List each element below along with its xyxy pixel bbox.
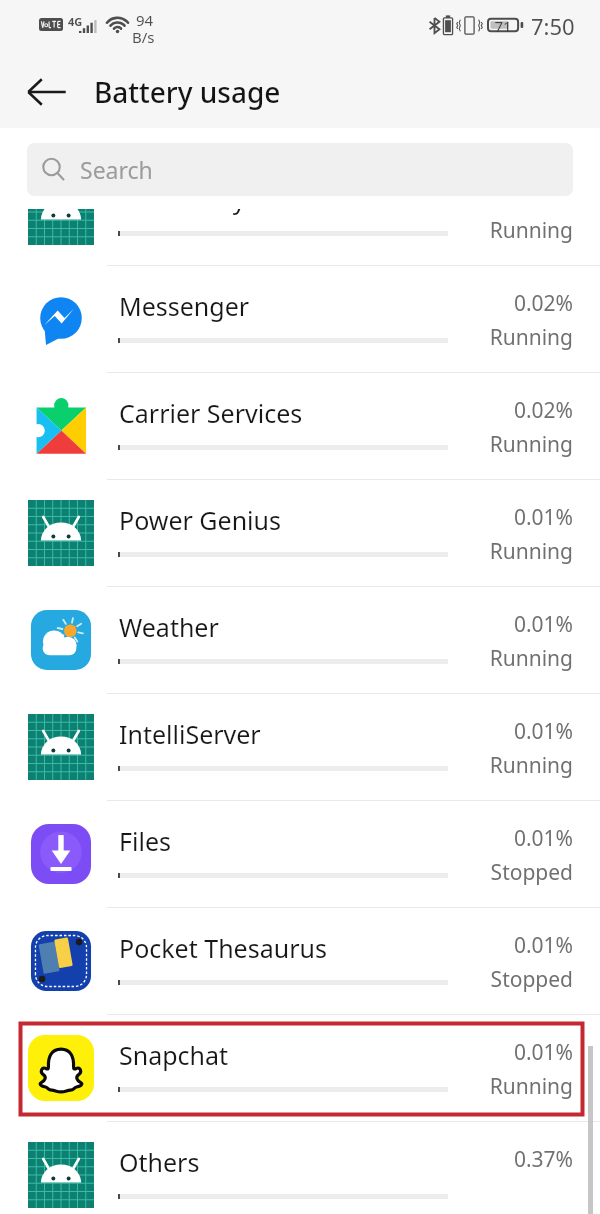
button[interactable]: Pocket Thesaurus [0, 908, 600, 1015]
staticText: Pocket Thesaurus [119, 931, 327, 965]
button[interactable]: Files [0, 801, 600, 908]
staticText: 71 [488, 16, 518, 36]
staticText: 0.01% [0, 1038, 573, 1067]
staticText: Running [0, 1072, 573, 1101]
staticText: Messenger [119, 289, 250, 323]
button[interactable]: Carrier Services [0, 373, 600, 480]
staticText: IntelliServer [119, 717, 261, 751]
staticText: 0.37% [0, 1145, 573, 1174]
button[interactable]: Search [27, 143, 573, 196]
staticText: 0.01% [0, 824, 573, 853]
staticText: Running [0, 644, 573, 673]
staticText: Running [0, 751, 573, 780]
staticText: Search [80, 154, 153, 185]
button[interactable]: Snapchat [0, 1015, 600, 1122]
staticText: Carrier Services [119, 396, 303, 430]
staticText [0, 209, 573, 211]
staticText: Running [0, 430, 573, 459]
staticText: Battery usage [94, 73, 281, 111]
staticText: 7:50 [531, 11, 575, 41]
staticText: Snapchat [119, 1038, 229, 1072]
staticText: 4G [68, 14, 83, 29]
button[interactable]: Android System [0, 209, 600, 266]
staticText: 0.01% [0, 931, 573, 960]
button[interactable]: Messenger [0, 266, 600, 373]
button[interactable]: Weather [0, 587, 600, 694]
staticText: Power Genius [119, 503, 281, 537]
staticText: B/s [132, 27, 155, 47]
staticText: 94 [136, 10, 154, 30]
staticText: Weather [119, 610, 219, 644]
staticText: Android System [119, 209, 305, 216]
staticText: Running [0, 537, 573, 566]
staticText: Running [0, 323, 573, 352]
button[interactable]: Others [0, 1122, 600, 1214]
button[interactable]: Power Genius [0, 480, 600, 587]
staticText: Others [119, 1145, 200, 1179]
staticText: 0.01% [0, 503, 573, 532]
staticText: Files [119, 824, 171, 858]
staticText: 0.01% [0, 717, 573, 746]
staticText: Running [0, 216, 573, 245]
button[interactable]: Back [16, 61, 78, 123]
staticText: Stopped [0, 858, 573, 887]
staticText: 0.02% [0, 289, 573, 318]
button[interactable]: IntelliServer [0, 694, 600, 801]
staticText [0, 1179, 573, 1208]
staticText: Stopped [0, 965, 573, 994]
staticText: 0.01% [0, 610, 573, 639]
staticText: 0.02% [0, 396, 573, 425]
